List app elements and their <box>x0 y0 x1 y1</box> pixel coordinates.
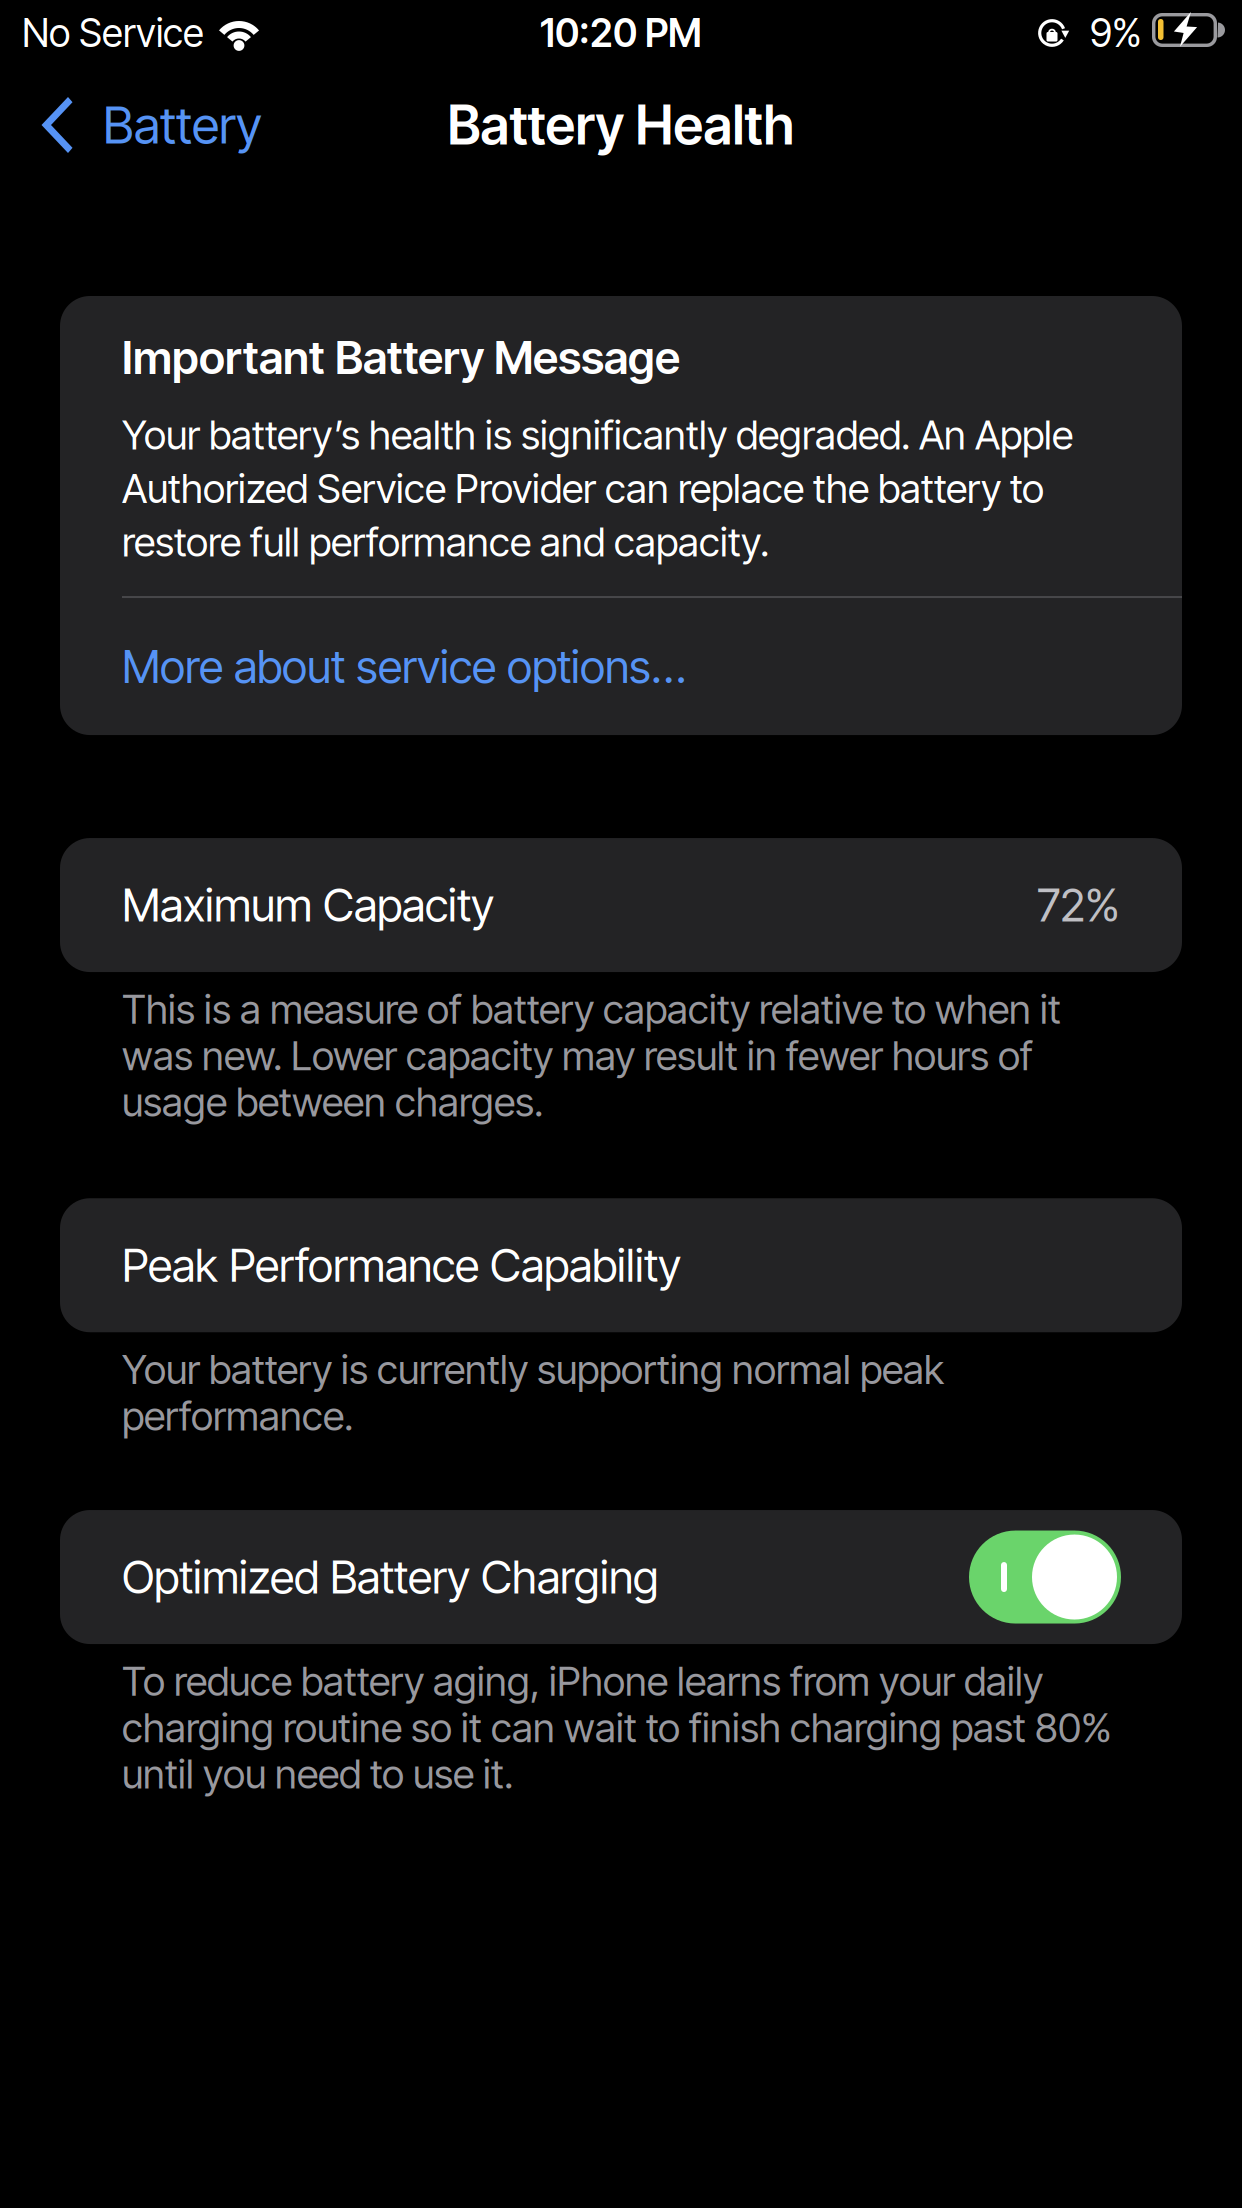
staticText: Maximum Capacity <box>122 878 494 932</box>
staticText: Battery Health <box>447 93 794 157</box>
staticText: This is a measure of battery capacity re… <box>122 985 1061 1126</box>
button[interactable]: Optimized Battery Charging <box>60 1510 1182 1644</box>
staticText: 10:20 PM <box>540 10 702 56</box>
button[interactable]: Maximum Capacity <box>60 838 1182 972</box>
staticText: Battery <box>103 94 262 156</box>
staticText: Important Battery Message <box>122 330 680 385</box>
staticText: 72% <box>1037 878 1120 932</box>
staticText: To reduce battery aging, iPhone learns f… <box>122 1657 1112 1798</box>
staticText: 9% <box>1090 10 1142 56</box>
staticText: No Service <box>22 10 204 56</box>
staticText: Peak Performance Capability <box>122 1238 681 1293</box>
button[interactable]: Peak Performance Capability <box>60 1198 1182 1332</box>
staticText: Your battery’s health is significantly d… <box>122 411 1073 566</box>
staticText: Optimized Battery Charging <box>122 1550 659 1604</box>
staticText: More about service options… <box>122 639 686 694</box>
button[interactable]: Battery <box>0 66 286 184</box>
staticText: Your battery is currently supporting nor… <box>122 1345 944 1440</box>
button[interactable]: More about service options… <box>60 598 1182 735</box>
